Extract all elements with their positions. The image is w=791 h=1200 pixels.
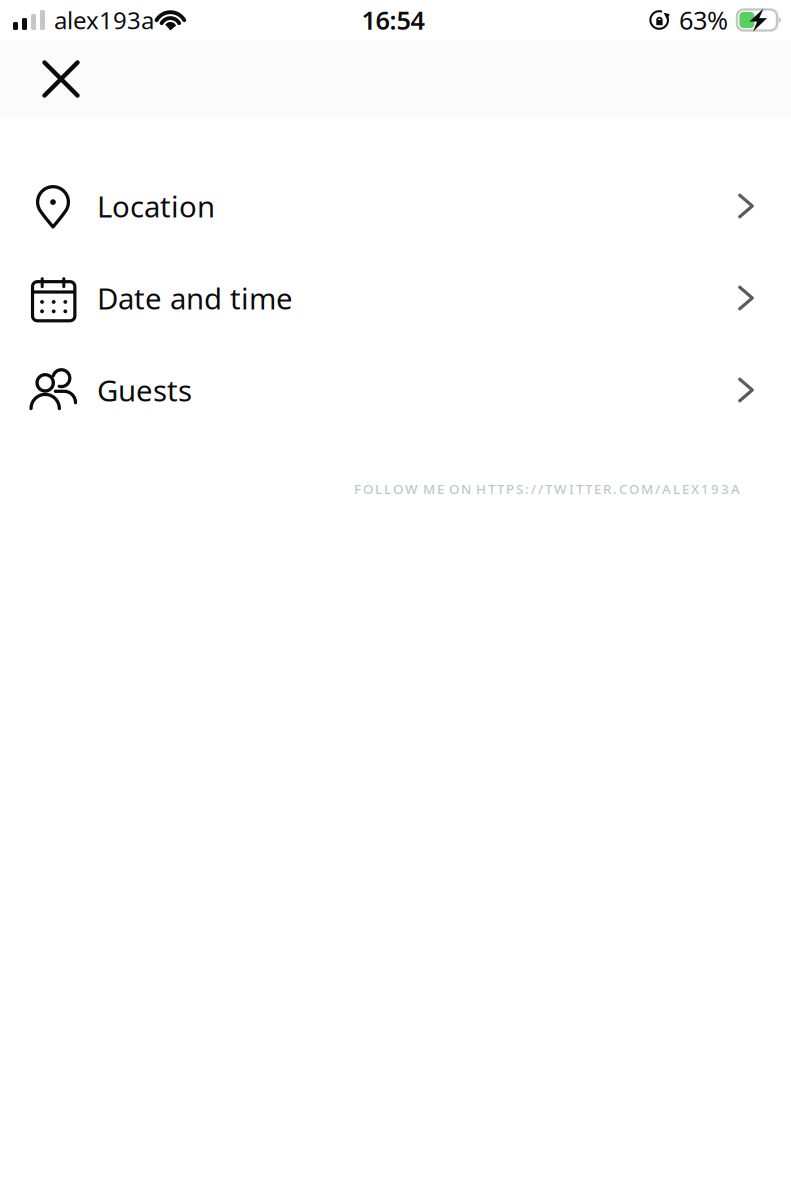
button[interactable]: Location bbox=[0, 160, 791, 252]
staticText: Date and time bbox=[97, 278, 293, 317]
staticText: Location bbox=[97, 186, 215, 225]
staticText: Guests bbox=[97, 370, 192, 409]
staticText: alex193a bbox=[54, 4, 154, 36]
staticText: F O L L O W M E O N H T T P S : / / T W … bbox=[354, 480, 740, 498]
button[interactable]: Date and time bbox=[0, 252, 791, 344]
button[interactable]: Close bbox=[25, 43, 97, 115]
button[interactable]: Guests bbox=[0, 344, 791, 436]
staticText: 63% bbox=[679, 3, 728, 37]
staticText: 16:54 bbox=[361, 3, 424, 37]
